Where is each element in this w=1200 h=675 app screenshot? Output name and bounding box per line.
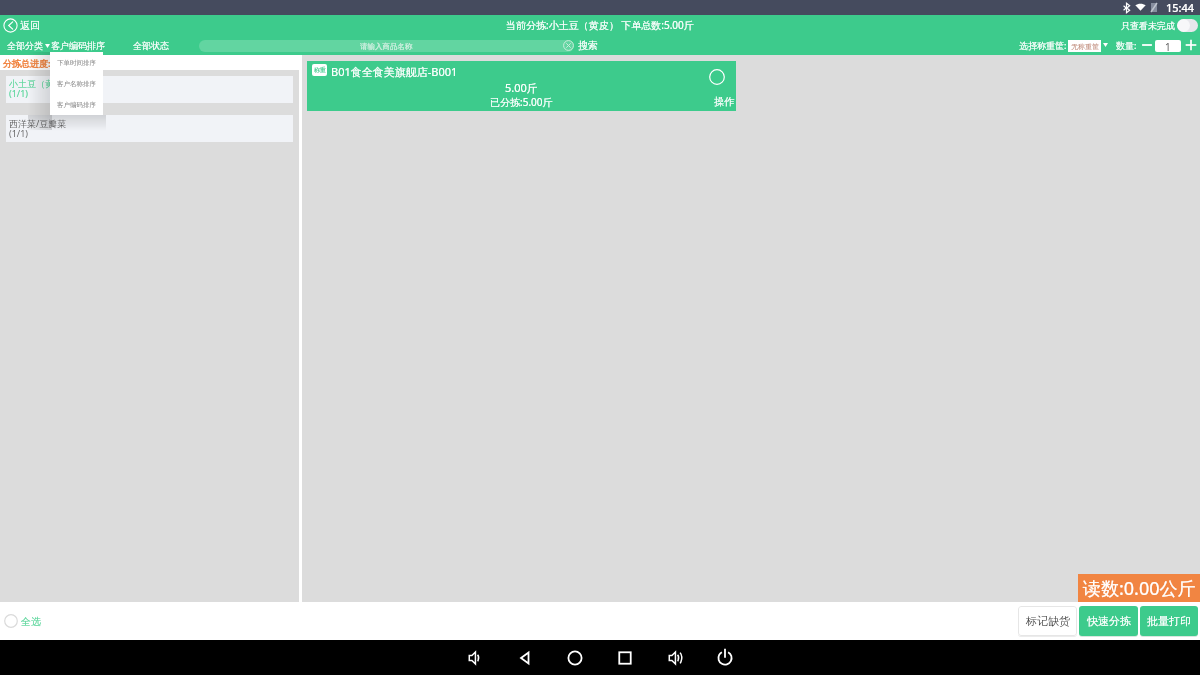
button[interactable]: 标记缺货	[1018, 606, 1077, 636]
button[interactable]: Recents	[614, 647, 636, 669]
staticText: (1/1)	[9, 127, 29, 139]
button[interactable]: 客户编码排序	[50, 94, 103, 115]
button[interactable]: 客户名称排序	[50, 73, 103, 94]
staticText: 客户名称排序	[57, 80, 96, 88]
staticText: (1/1)	[9, 87, 29, 99]
staticText: 数量:	[1116, 39, 1137, 51]
button[interactable]: Power	[714, 647, 736, 669]
staticText: 批量打印	[1147, 614, 1191, 628]
staticText: 15:44	[1166, 0, 1195, 15]
button[interactable]: Decrease quantity	[1140, 38, 1154, 52]
button[interactable]: 客户编码排序	[51, 40, 105, 51]
staticText: 无称重筐	[1071, 42, 1099, 51]
staticText: 西洋菜/豆瓣菜	[9, 117, 67, 129]
staticText: 搜索	[578, 39, 598, 52]
button[interactable]: 全选	[4, 614, 41, 628]
button[interactable]: 批量打印	[1140, 606, 1198, 636]
staticText: 读数:0.00公斤	[1083, 576, 1196, 601]
staticText: 1	[1165, 40, 1171, 52]
button[interactable]: 操作	[714, 95, 734, 108]
staticText: 标记缺货	[1026, 614, 1070, 628]
button[interactable]: Back	[514, 647, 536, 669]
staticText: 称重	[314, 66, 326, 74]
button[interactable]: 称重	[307, 61, 736, 111]
button[interactable]: 请输入商品名称	[199, 40, 574, 52]
button[interactable]: 全部状态	[133, 40, 169, 51]
button[interactable]: 小土豆（黄皮）	[6, 76, 293, 103]
button[interactable]: 1	[1155, 40, 1181, 52]
staticText: 当前分拣:小土豆（黄皮） 下单总数:5.00斤	[506, 18, 694, 32]
staticText: 只查看未完成	[1121, 20, 1175, 31]
other: Back	[3, 18, 18, 33]
staticText: 5.00斤	[505, 80, 538, 95]
staticText: 下单时间排序	[57, 59, 96, 67]
staticText: 小土豆（黄皮）	[9, 78, 72, 89]
button[interactable]: Clear search	[563, 40, 574, 51]
button[interactable]: Back	[2, 18, 42, 33]
button[interactable]: 下单时间排序	[50, 52, 103, 73]
staticText: 快速分拣	[1087, 614, 1131, 628]
button[interactable]: 全部分类	[5, 40, 52, 51]
staticText: 全选	[21, 615, 41, 628]
button[interactable]: 无称重筐	[1068, 40, 1101, 52]
staticText: 客户编码排序	[51, 40, 105, 51]
staticText: 请输入商品名称	[360, 42, 413, 51]
button[interactable]: Select order	[709, 69, 725, 85]
staticText: 全部分类	[7, 40, 43, 51]
staticText: 选择称重筐:	[1019, 39, 1067, 51]
staticText: 全部状态	[133, 40, 169, 51]
button[interactable]: 西洋菜/豆瓣菜	[6, 115, 293, 142]
button[interactable]: 只查看未完成	[1121, 19, 1198, 32]
staticText: 返回	[20, 19, 40, 32]
staticText: B01食全食美旗舰店-B001	[331, 64, 458, 79]
button[interactable]: Home	[564, 647, 586, 669]
staticText: 客户编码排序	[57, 101, 96, 109]
staticText: 分拣总进度:1/2	[3, 57, 65, 69]
button[interactable]: 快速分拣	[1079, 606, 1138, 636]
button[interactable]: Increase quantity	[1184, 38, 1198, 52]
staticText: 已分拣:5.00斤	[490, 95, 553, 109]
staticText: 操作	[714, 95, 734, 108]
button[interactable]: 搜索	[578, 39, 598, 52]
button[interactable]: Volume down	[464, 647, 486, 669]
button[interactable]: Volume up	[664, 647, 686, 669]
